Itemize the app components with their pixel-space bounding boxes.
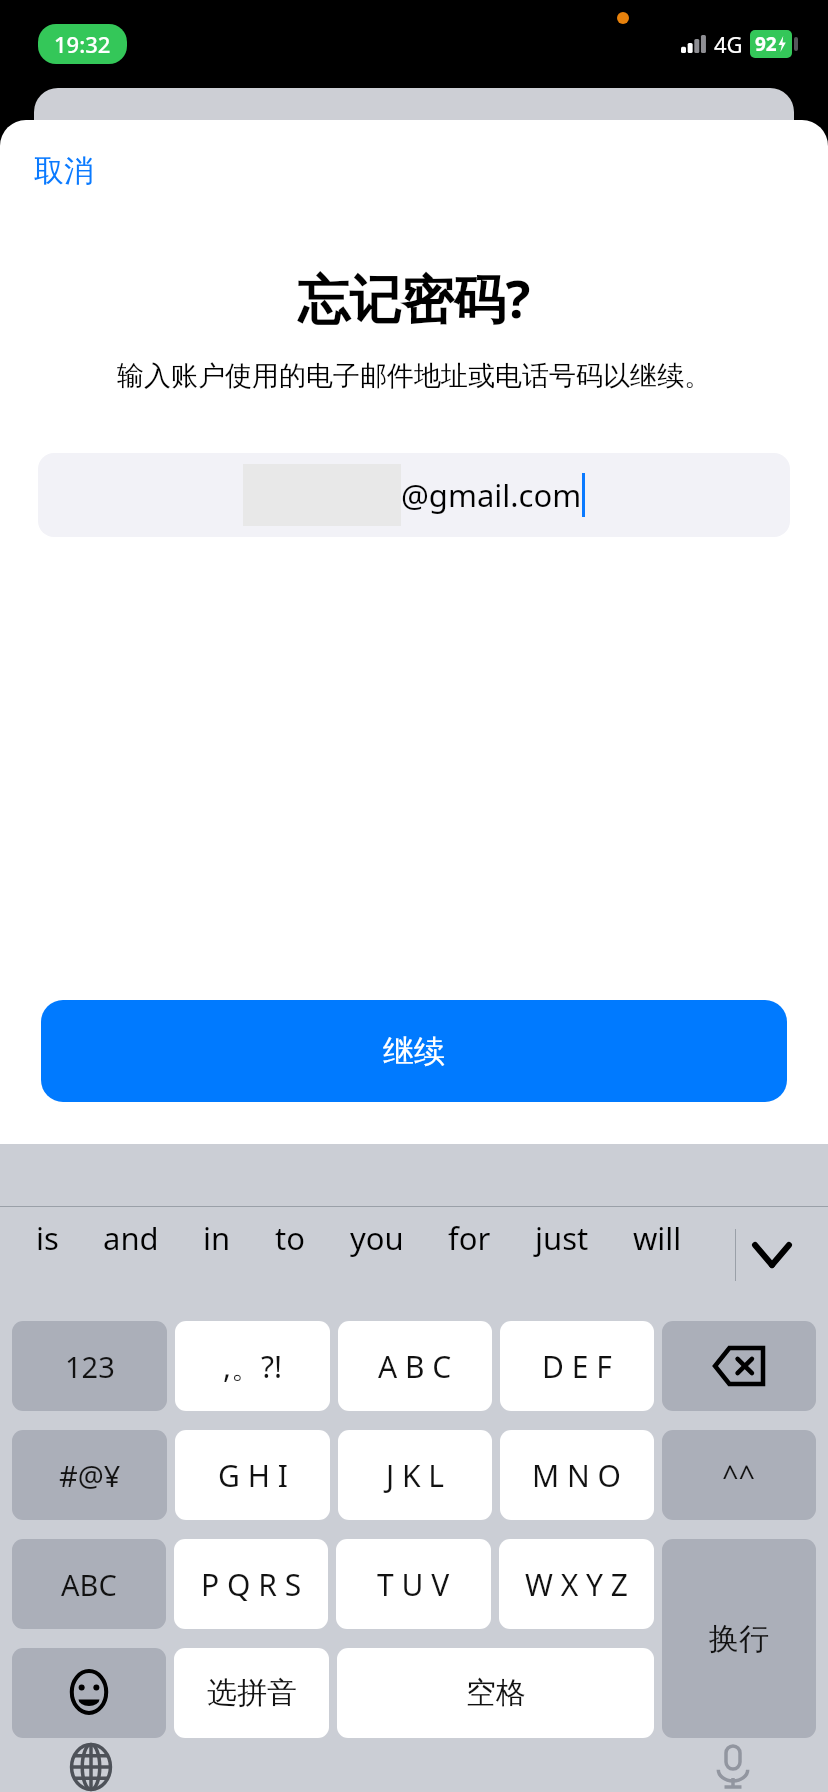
button[interactable]: Dictation — [700, 1742, 766, 1792]
staticText: 4G — [714, 29, 743, 59]
staticText: T U V — [377, 1564, 450, 1605]
button[interactable]: you — [342, 1207, 412, 1269]
staticText: M N O — [532, 1455, 622, 1496]
staticText: ,。?! — [223, 1346, 283, 1387]
button[interactable]: for — [440, 1207, 499, 1269]
button[interactable]: M N O — [500, 1430, 654, 1520]
staticText: to — [275, 1217, 305, 1259]
staticText: 继续 — [383, 1032, 445, 1071]
staticText: 123 — [65, 1347, 115, 1386]
button[interactable]: ,。?! — [175, 1321, 330, 1411]
staticText: ^^ — [722, 1456, 756, 1495]
staticText: P Q R S — [201, 1564, 302, 1605]
button[interactable]: 换行 — [662, 1539, 816, 1738]
staticText: just — [535, 1217, 589, 1259]
button[interactable]: 继续 — [41, 1000, 787, 1102]
button[interactable]: ABC — [12, 1539, 166, 1629]
button[interactable]: to — [267, 1207, 313, 1269]
button[interactable]: just — [527, 1207, 597, 1269]
staticText: 忘记密码? — [0, 262, 828, 333]
staticText: ABC — [61, 1565, 117, 1604]
button[interactable]: Emoji — [12, 1648, 166, 1738]
button[interactable]: ^^ — [662, 1430, 816, 1520]
button[interactable]: Change keyboard — [58, 1742, 124, 1792]
staticText: 92 — [755, 31, 777, 57]
button[interactable]: W X Y Z — [499, 1539, 654, 1629]
button[interactable]: will — [625, 1207, 690, 1269]
button[interactable]: T U V — [336, 1539, 491, 1629]
button[interactable]: A B C — [338, 1321, 492, 1411]
button[interactable]: Delete — [662, 1321, 816, 1411]
staticText: 输入账户使用的电子邮件地址或电话号码以继续。 — [24, 359, 804, 393]
staticText: is — [36, 1217, 59, 1259]
button[interactable]: #@¥ — [12, 1430, 167, 1520]
staticText: and — [103, 1217, 159, 1259]
button[interactable]: J K L — [338, 1430, 492, 1520]
staticText: 19:32 — [54, 29, 111, 59]
staticText: D E F — [542, 1346, 612, 1387]
button[interactable]: 123 — [12, 1321, 167, 1411]
staticText: #@¥ — [59, 1456, 121, 1495]
staticText: you — [350, 1217, 404, 1259]
staticText: 选拼音 — [207, 1674, 297, 1712]
button[interactable]: D E F — [500, 1321, 654, 1411]
button[interactable]: 取消 — [28, 148, 100, 194]
button[interactable]: G H I — [175, 1430, 330, 1520]
staticText: will — [633, 1217, 682, 1259]
staticText: A B C — [378, 1346, 452, 1387]
staticText: G H I — [218, 1455, 288, 1496]
button[interactable]: Hide keyboard — [736, 1219, 808, 1291]
button[interactable]: 空格 — [337, 1648, 654, 1738]
button[interactable]: 选拼音 — [174, 1648, 329, 1738]
staticText: 换行 — [709, 1620, 769, 1658]
staticText: for — [448, 1217, 491, 1259]
button[interactable]: is — [28, 1207, 67, 1269]
staticText: 空格 — [466, 1674, 526, 1712]
button[interactable]: and — [95, 1207, 167, 1269]
button[interactable]: P Q R S — [174, 1539, 328, 1629]
staticText: in — [203, 1217, 231, 1259]
staticText: J K L — [386, 1455, 445, 1496]
staticText: W X Y Z — [525, 1564, 629, 1605]
staticText: 取消 — [34, 152, 94, 190]
button[interactable]: in — [195, 1207, 239, 1269]
staticText: @gmail.com — [401, 474, 582, 516]
button[interactable]: @gmail.com — [38, 453, 790, 537]
